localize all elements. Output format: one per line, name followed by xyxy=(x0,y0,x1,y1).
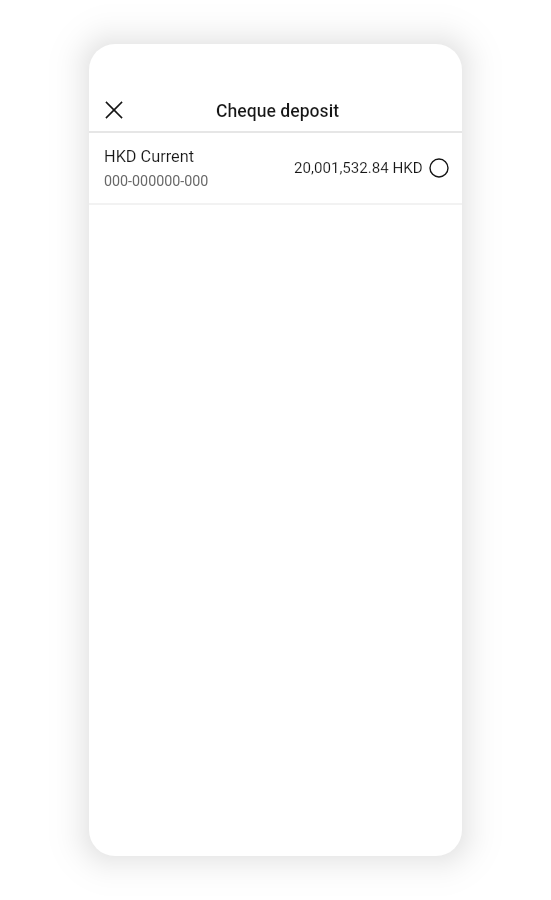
button[interactable]: Close xyxy=(94,90,134,130)
staticText: HKD Current xyxy=(104,147,195,166)
staticText: 000-000000-000 xyxy=(104,173,209,190)
staticText: Cheque deposit xyxy=(91,101,462,122)
staticText: 20,001,532.84 HKD xyxy=(294,159,423,177)
button[interactable]: HKD Current xyxy=(89,133,462,203)
